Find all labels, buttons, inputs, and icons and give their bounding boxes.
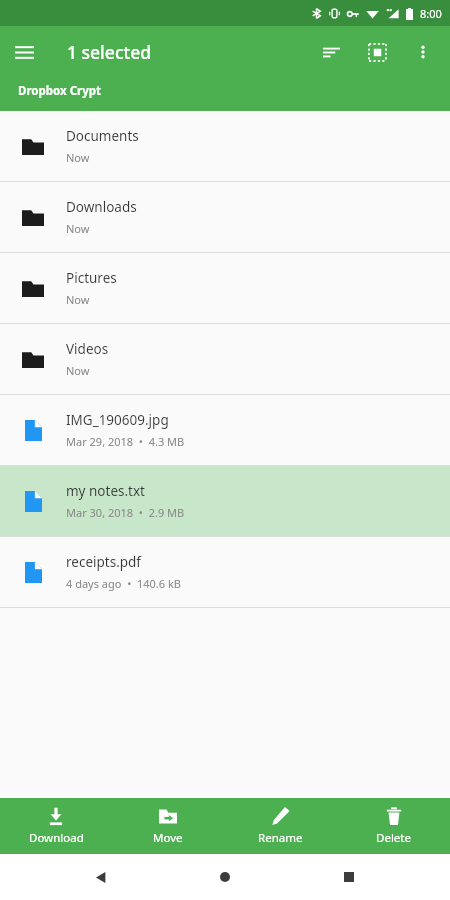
staticText: Documents	[66, 127, 139, 145]
staticText: my notes.txt	[66, 482, 145, 500]
button[interactable]: Videos	[0, 324, 450, 394]
staticText: 4 days ago • 140.6 kB	[66, 576, 181, 591]
button[interactable]: Select all	[354, 29, 400, 75]
staticText: Move	[153, 830, 183, 846]
staticText: Dropbox Crypt	[18, 83, 101, 99]
button[interactable]: Documents	[0, 111, 450, 181]
staticText: IMG_190609.jpg	[66, 411, 169, 429]
staticText: Now	[66, 292, 90, 307]
staticText: Download	[29, 830, 84, 846]
button[interactable]: Back	[88, 864, 114, 890]
staticText: Downloads	[66, 198, 137, 216]
staticText: Mar 30, 2018 • 2.9 MB	[66, 505, 185, 520]
button[interactable]: receipts.pdf	[0, 537, 450, 607]
button[interactable]: Download	[0, 798, 112, 854]
staticText: Videos	[66, 340, 109, 358]
button[interactable]: Home	[212, 864, 238, 890]
staticText: Rename	[258, 830, 303, 846]
staticText: receipts.pdf	[66, 553, 142, 571]
staticText: 8:00	[420, 6, 442, 21]
button[interactable]: IMG_190609.jpg	[0, 395, 450, 465]
button[interactable]: Recents	[336, 864, 362, 890]
button[interactable]: Sort	[308, 29, 354, 75]
button[interactable]: More options	[400, 29, 446, 75]
button[interactable]: Menu	[0, 28, 48, 76]
staticText: 1 selected	[67, 40, 152, 64]
staticText: Now	[66, 150, 90, 165]
button[interactable]: Rename	[224, 798, 337, 854]
staticText: Now	[66, 363, 90, 378]
button[interactable]: Downloads	[0, 182, 450, 252]
button[interactable]: Pictures	[0, 253, 450, 323]
staticText: Mar 29, 2018 • 4.3 MB	[66, 434, 185, 449]
button[interactable]: Delete	[337, 798, 450, 854]
button[interactable]: my notes.txt	[0, 466, 450, 536]
staticText: Delete	[376, 830, 411, 846]
button[interactable]: Move	[112, 798, 224, 854]
staticText: Now	[66, 221, 90, 236]
staticText: Pictures	[66, 269, 117, 287]
